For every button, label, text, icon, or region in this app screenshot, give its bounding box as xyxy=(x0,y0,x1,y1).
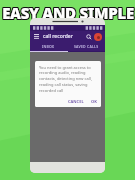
staticText: You need to grant access to recording au… xyxy=(39,65,98,94)
staticText: SAVED CALLS xyxy=(74,44,99,49)
staticText: EASY AND SIMPLE xyxy=(3,3,135,23)
staticText: EASY AND SIMPLE xyxy=(2,3,134,23)
staticText: EASY AND SIMPLE xyxy=(1,4,133,24)
staticText: OK xyxy=(91,99,97,104)
staticText: EASY AND SIMPLE xyxy=(1,3,133,23)
button[interactable]: SAVED CALLS xyxy=(67,42,105,51)
button[interactable]: INBOX xyxy=(30,42,67,51)
staticText: EASY AND SIMPLE xyxy=(3,2,135,22)
staticText: call recorder xyxy=(43,33,85,40)
button[interactable]: CANCEL xyxy=(67,98,85,105)
button[interactable]: Record xyxy=(94,33,102,41)
button[interactable]: Open navigation menu xyxy=(33,33,40,40)
staticText: EASY AND SIMPLE xyxy=(2,4,134,24)
staticText: INBOX xyxy=(42,44,55,49)
staticText: CANCEL xyxy=(68,99,84,104)
staticText: EASY AND SIMPLE xyxy=(3,4,135,24)
button[interactable]: Search xyxy=(85,33,93,41)
staticText: EASY AND SIMPLE xyxy=(2,2,134,22)
staticText: EASY AND SIMPLE xyxy=(1,2,133,22)
button[interactable]: OK xyxy=(90,98,98,105)
